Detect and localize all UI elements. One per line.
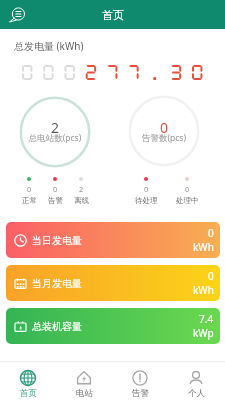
staticText: 当月发电量 [32,277,82,290]
staticText: 告警 [48,196,63,205]
button[interactable]: 0 [35,177,75,205]
staticText: 当日发电量 [32,234,82,247]
button[interactable]: 电站 [56,361,112,400]
button[interactable]: 告警 [112,361,168,400]
staticText: 总电站数(pcs) [5,132,105,144]
button[interactable]: 2 [61,177,101,205]
button[interactable]: 当月发电量 [6,265,220,301]
staticText: kWh [193,283,214,297]
staticText: 0 [208,269,214,283]
staticText: 电站 [76,388,93,399]
staticText: 0 [27,184,32,194]
button[interactable]: 个人 [168,361,224,400]
staticText: 7.4 [199,312,214,326]
staticText: 处理中 [176,196,199,205]
staticText: 0 [185,184,190,194]
staticText: 待处理 [135,196,158,205]
staticText: 首页 [102,8,124,22]
staticText: 告警数(pcs) [114,132,214,144]
staticText: 个人 [188,388,205,399]
staticText: 正常 [22,196,37,205]
staticText: 2 [79,184,84,194]
button[interactable]: 0 [126,177,166,205]
button[interactable]: 0 [167,177,207,205]
staticText: 0 [144,184,149,194]
button[interactable]: 总装机容量 [6,308,220,344]
staticText: kWh [193,240,214,254]
staticText: 0 [208,226,214,240]
staticText: 0 [114,118,214,137]
staticText: 告警 [132,388,149,399]
staticText: 2 [5,118,105,137]
staticText: kWp [193,326,214,340]
staticText: 总装机容量 [32,320,82,333]
button[interactable]: 首页 [0,361,56,400]
staticText: 0 [53,184,58,194]
button[interactable]: 当日发电量 [6,222,220,258]
staticText: 离线 [74,196,89,205]
staticText: 首页 [20,388,37,399]
button[interactable]: 0 [9,177,49,205]
staticText: 总发电量 (kWh) [14,39,84,53]
button[interactable]: Messages [8,5,28,25]
